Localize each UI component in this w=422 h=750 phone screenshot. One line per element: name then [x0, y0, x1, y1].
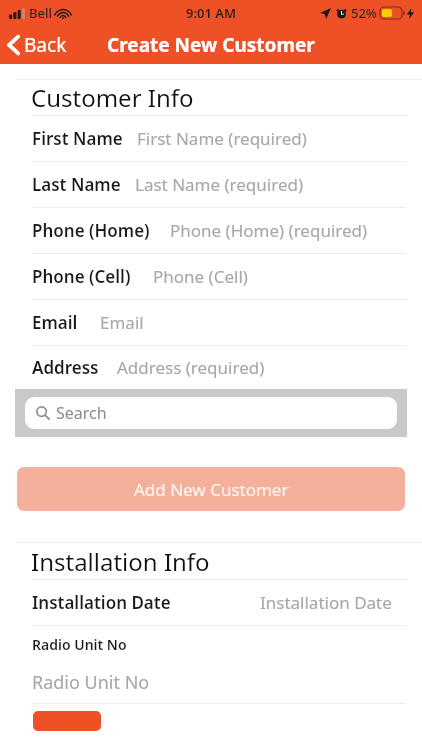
staticText: Email	[100, 311, 144, 334]
button[interactable]: Installation Date	[0, 580, 422, 625]
staticText: Email	[32, 311, 78, 334]
staticText: Last Name	[32, 173, 121, 196]
button[interactable]: Last Name	[0, 162, 422, 207]
button[interactable]: Phone (Cell)	[0, 254, 422, 299]
staticText: Radio Unit No	[32, 670, 150, 695]
staticText: 52%	[351, 4, 377, 22]
staticText: Phone (Cell)	[32, 265, 131, 288]
button[interactable]: Add New Customer	[17, 467, 405, 511]
button[interactable]: Email	[0, 300, 422, 345]
button[interactable]: Scan radio unit	[33, 711, 101, 731]
button[interactable]: Search	[25, 397, 397, 429]
staticText: Customer Info	[31, 81, 194, 114]
staticText: Phone (Cell)	[153, 265, 248, 288]
staticText: Installation Date	[260, 591, 392, 614]
staticText: Phone (Home)	[32, 219, 150, 242]
button[interactable]: First Name	[0, 116, 422, 161]
staticText: Radio Unit No	[32, 635, 127, 654]
staticText: Last Name (required)	[135, 173, 304, 196]
staticText: First Name	[32, 127, 123, 150]
button[interactable]: Radio Unit No	[0, 626, 422, 662]
button[interactable]: Phone (Home)	[0, 208, 422, 253]
staticText: Installation Info	[31, 545, 210, 578]
staticText: Create New Customer	[107, 32, 315, 58]
staticText: Bell	[29, 4, 52, 22]
staticText: Address	[32, 356, 99, 379]
button[interactable]: Back	[0, 28, 77, 62]
staticText: First Name (required)	[137, 127, 307, 150]
staticText: Add New Customer	[134, 478, 289, 501]
staticText: Back	[24, 32, 67, 58]
staticText: 9:01 AM	[186, 4, 237, 22]
staticText: Address (required)	[117, 356, 265, 379]
staticText: Search	[56, 402, 107, 424]
button[interactable]: Radio Unit No	[0, 662, 422, 703]
staticText: Installation Date	[32, 591, 171, 614]
button[interactable]: Address	[0, 346, 422, 389]
staticText: Phone (Home) (required)	[170, 219, 368, 242]
